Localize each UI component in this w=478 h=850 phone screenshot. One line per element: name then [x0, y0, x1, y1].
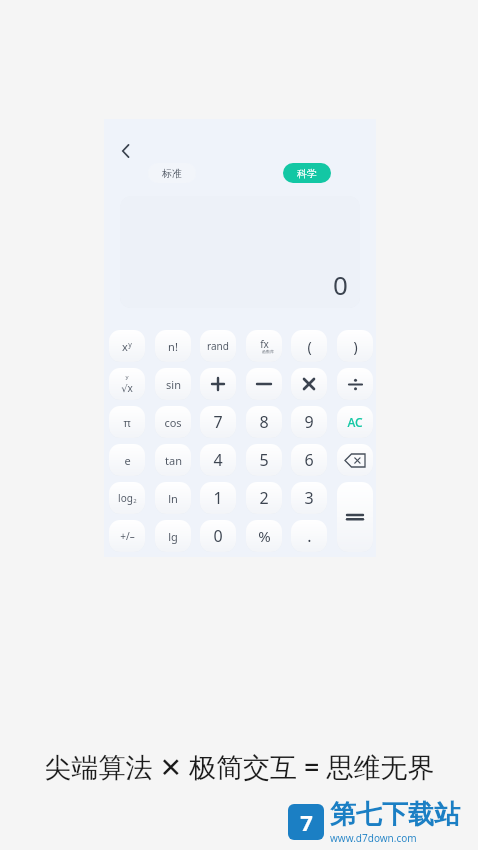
staticText: 7: [300, 807, 313, 837]
staticText: log: [118, 491, 133, 505]
staticText: 0: [213, 525, 223, 547]
staticText: lg: [168, 529, 178, 544]
staticText: AC: [347, 414, 363, 430]
staticText: 0: [333, 267, 348, 302]
staticText: 8: [259, 411, 269, 433]
button[interactable]: 标准: [148, 163, 196, 183]
button[interactable]: e: [109, 444, 145, 476]
button[interactable]: 6: [291, 444, 327, 476]
staticText: 第七下载站: [330, 798, 460, 831]
staticText: 2: [259, 487, 269, 509]
button[interactable]: %: [246, 520, 282, 552]
button[interactable]: x: [109, 330, 145, 362]
staticText: y: [128, 340, 132, 350]
button[interactable]: 0: [200, 520, 236, 552]
staticText: 7: [213, 411, 223, 433]
staticText: fx: [260, 337, 269, 351]
staticText: rand: [207, 339, 229, 353]
staticText: y: [125, 373, 129, 381]
staticText: π: [123, 415, 131, 430]
staticText: (: [307, 337, 312, 356]
staticText: 1: [213, 487, 223, 509]
button[interactable]: y: [109, 368, 145, 400]
staticText: 尖端算法 ✕ 极简交互 = 思维无界: [44, 748, 435, 785]
staticText: √x: [121, 381, 133, 395]
staticText: cos: [164, 415, 182, 430]
button[interactable]: Plus: [200, 368, 236, 400]
staticText: 5: [259, 449, 269, 471]
staticText: .: [307, 525, 312, 547]
staticText: 4: [213, 449, 223, 471]
button[interactable]: ): [337, 330, 373, 362]
button[interactable]: 3: [291, 482, 327, 514]
button[interactable]: n!: [155, 330, 191, 362]
staticText: 2: [133, 497, 137, 505]
staticText: 科学: [297, 167, 317, 180]
staticText: 3: [304, 487, 314, 509]
button[interactable]: 8: [246, 406, 282, 438]
button[interactable]: fx: [246, 330, 282, 362]
staticText: 函数库: [262, 349, 274, 354]
button[interactable]: log: [109, 482, 145, 514]
button[interactable]: cos: [155, 406, 191, 438]
button[interactable]: sin: [155, 368, 191, 400]
staticText: 9: [304, 411, 314, 433]
button[interactable]: Multiply: [291, 368, 327, 400]
button[interactable]: 科学: [283, 163, 331, 183]
button[interactable]: 9: [291, 406, 327, 438]
staticText: ln: [168, 491, 178, 506]
button[interactable]: Backspace: [337, 444, 373, 476]
button[interactable]: AC: [337, 406, 373, 438]
staticText: e: [124, 453, 131, 468]
staticText: 标准: [162, 167, 182, 180]
staticText: www.d7down.com: [330, 831, 417, 845]
button[interactable]: Divide: [337, 368, 373, 400]
staticText: tan: [165, 453, 182, 468]
button[interactable]: π: [109, 406, 145, 438]
button[interactable]: (: [291, 330, 327, 362]
button[interactable]: Back: [112, 137, 140, 165]
staticText: n!: [168, 339, 178, 354]
staticText: 6: [304, 449, 314, 471]
staticText: x: [122, 339, 128, 354]
button[interactable]: +/–: [109, 520, 145, 552]
button[interactable]: 4: [200, 444, 236, 476]
button[interactable]: ln: [155, 482, 191, 514]
staticText: sin: [166, 377, 181, 392]
button[interactable]: 7: [200, 406, 236, 438]
button[interactable]: lg: [155, 520, 191, 552]
button[interactable]: Minus: [246, 368, 282, 400]
button[interactable]: 1: [200, 482, 236, 514]
button[interactable]: 5: [246, 444, 282, 476]
button[interactable]: tan: [155, 444, 191, 476]
button[interactable]: .: [291, 520, 327, 552]
button[interactable]: rand: [200, 330, 236, 362]
staticText: +/–: [120, 529, 135, 543]
staticText: %: [258, 526, 271, 546]
button[interactable]: Equals: [337, 482, 373, 552]
staticText: ): [353, 337, 358, 356]
button[interactable]: 2: [246, 482, 282, 514]
